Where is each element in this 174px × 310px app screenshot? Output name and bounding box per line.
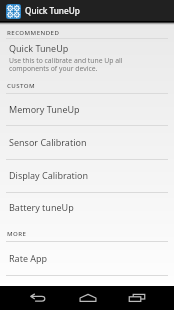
staticText: Battery tuneUp [9, 201, 74, 213]
staticText: Quick TuneUp [25, 5, 80, 16]
staticText: Rate App [9, 252, 48, 264]
button[interactable]: CUSTOM [7, 81, 36, 89]
button[interactable]: Back [19, 286, 57, 310]
staticText: CUSTOM [7, 81, 36, 89]
button[interactable]: Home [69, 286, 107, 310]
staticText: MORE [7, 229, 27, 237]
staticText: Display Calibration [9, 169, 89, 181]
staticText: Use this to calibrate and tune Up all co… [9, 56, 142, 73]
staticText: Quick TuneUp [9, 42, 69, 54]
button[interactable]: Quick TuneUp [0, 41, 174, 77]
button[interactable]: Sensor Calibration [0, 131, 174, 153]
staticText: Memory TuneUp [9, 103, 80, 115]
button[interactable]: RECOMMENDED [7, 28, 60, 36]
button[interactable]: Battery tuneUp [0, 196, 174, 218]
button[interactable]: Recent apps [118, 286, 156, 310]
button[interactable]: MORE [7, 229, 27, 237]
button[interactable]: Display Calibration [0, 164, 174, 186]
staticText: RECOMMENDED [7, 28, 60, 36]
staticText: Sensor Calibration [9, 136, 87, 148]
button[interactable]: Rate App [0, 247, 174, 269]
button[interactable]: Memory TuneUp [0, 98, 174, 120]
